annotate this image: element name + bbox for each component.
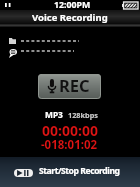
staticText: Start/Stop Recording	[39, 165, 120, 177]
button[interactable]: Start/Stop Recording	[0, 157, 140, 187]
staticText: 12:00PM	[54, 0, 91, 10]
button[interactable]: Record	[38, 74, 101, 99]
staticText: 128kbps	[68, 110, 98, 120]
staticText: MP3	[45, 109, 63, 120]
staticText: 00:00:00	[0, 121, 140, 140]
staticText: REC	[59, 74, 90, 96]
staticText: Voice Recording	[32, 11, 108, 24]
staticText: -018:01:02	[0, 137, 139, 153]
